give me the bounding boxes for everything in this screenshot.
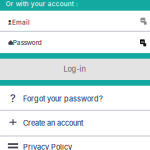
button[interactable]: Privacy Policy (0, 136, 150, 150)
button[interactable]: Email (0, 10, 150, 31)
button[interactable]: Log-in (0, 59, 150, 80)
button[interactable]: Create an account (0, 111, 150, 135)
staticText: Or with your account : (6, 0, 78, 8)
staticText: Forgot your password? (23, 94, 103, 103)
staticText: Privacy Policy (23, 143, 72, 150)
staticText: Create an account (23, 119, 83, 128)
button[interactable]: Password (0, 32, 150, 54)
staticText: Email (12, 18, 30, 26)
staticText: ? (10, 92, 16, 105)
staticText: Log-in (63, 65, 85, 73)
staticText: Password (13, 39, 42, 46)
button[interactable]: ? (0, 86, 150, 110)
